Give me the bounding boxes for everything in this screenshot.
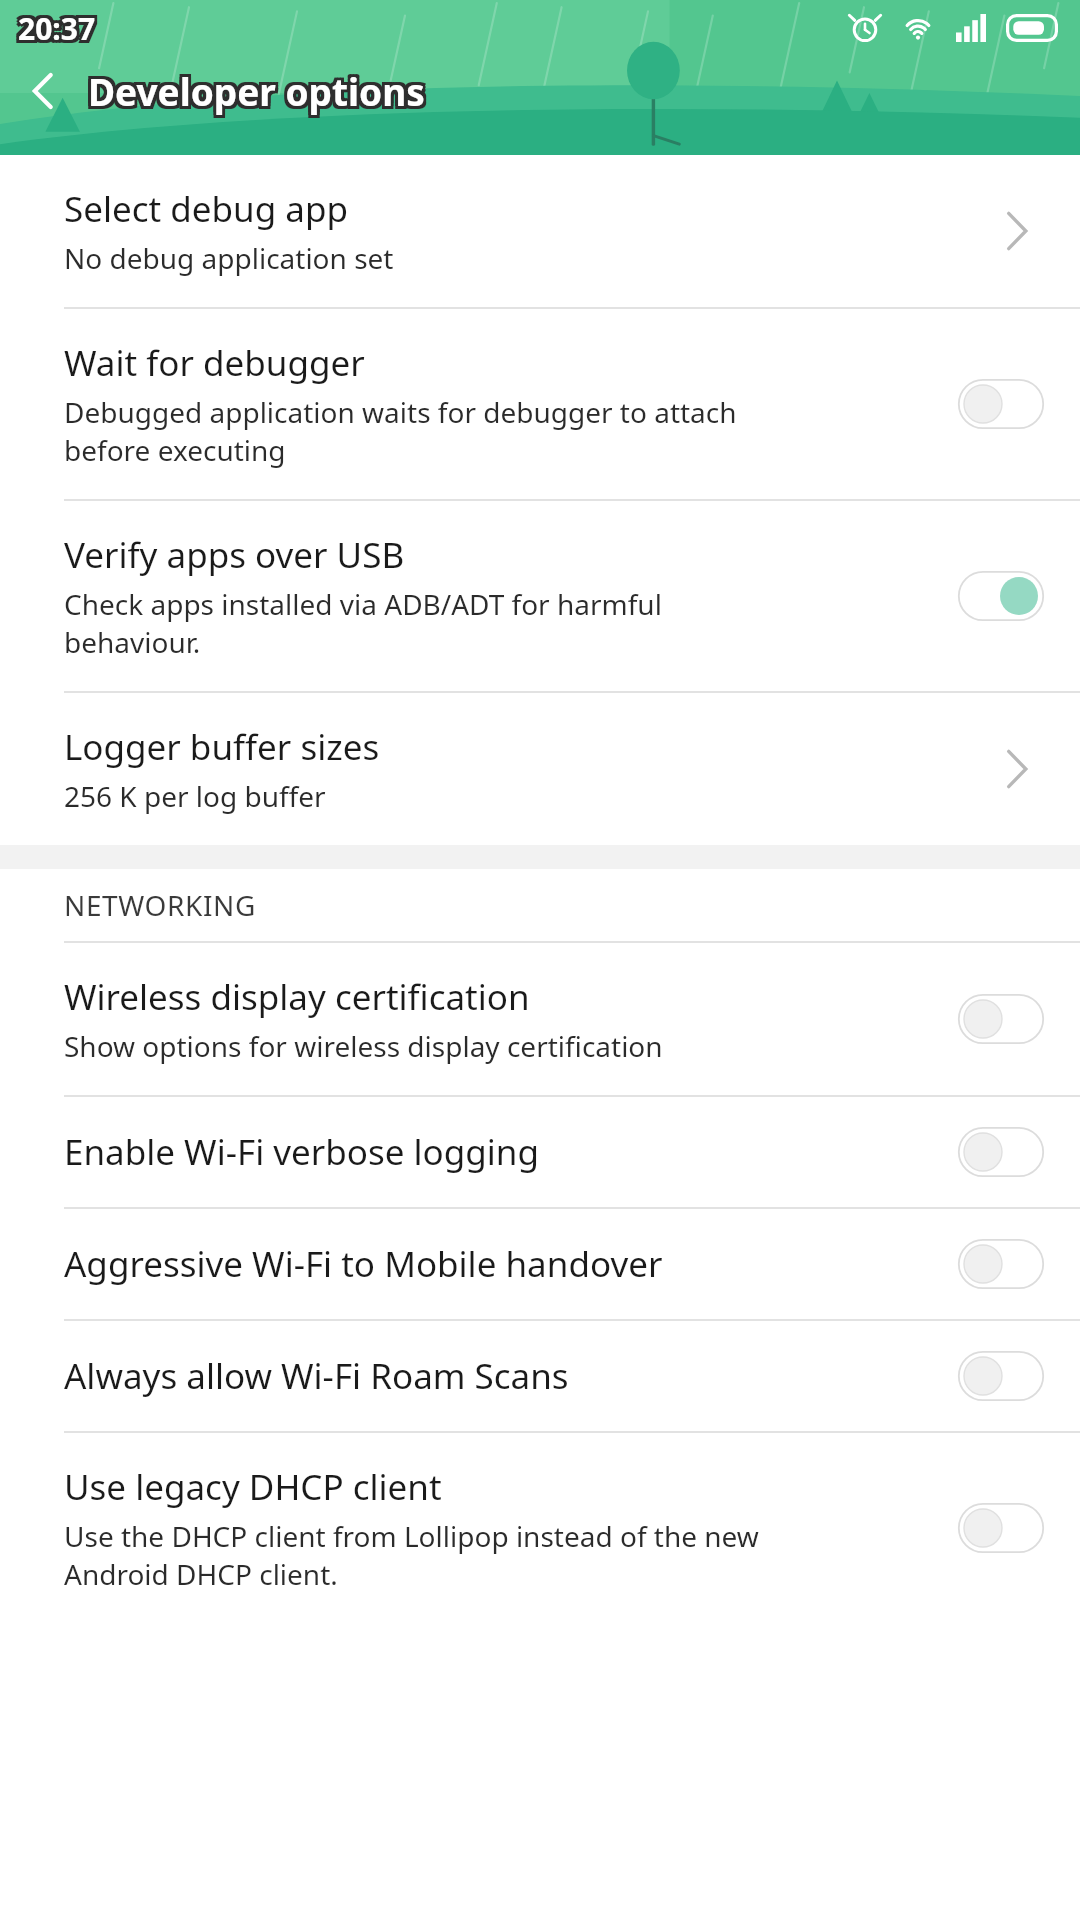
staticText: Select debug app — [64, 185, 348, 233]
button[interactable]: Wait for debugger — [0, 309, 1080, 499]
staticText: Developer options — [91, 66, 428, 116]
staticText: 20:37 — [21, 11, 99, 52]
staticText: 20:37 — [15, 8, 93, 49]
staticText: Check apps installed via ADB/ADT for har… — [64, 585, 662, 661]
button[interactable]: Toggle off — [958, 379, 1044, 429]
staticText: NETWORKING — [64, 886, 256, 924]
staticText: Developer options — [91, 63, 428, 113]
staticText: Wait for debugger — [64, 339, 365, 387]
staticText: 20:37 — [18, 5, 96, 46]
staticText: 20:37 — [15, 5, 93, 46]
button[interactable]: Open — [990, 742, 1044, 796]
staticText: 20:37 — [21, 8, 99, 49]
button[interactable]: Open — [990, 204, 1044, 258]
button[interactable]: Toggle off — [958, 1351, 1044, 1401]
staticText: Wireless display certification — [64, 973, 530, 1021]
staticText: 20:37 — [18, 11, 96, 52]
staticText: Developer options — [88, 69, 425, 119]
button[interactable]: Use legacy DHCP client — [0, 1433, 1080, 1623]
staticText: Always allow Wi-Fi Roam Scans — [64, 1352, 569, 1400]
button[interactable]: Toggle off — [958, 1127, 1044, 1177]
button[interactable]: Always allow Wi-Fi Roam Scans — [0, 1321, 1080, 1431]
staticText: Developer options — [85, 66, 422, 116]
staticText: Show options for wireless display certif… — [64, 1027, 663, 1065]
staticText: No debug application set — [64, 239, 394, 277]
button[interactable]: Toggle off — [958, 1503, 1044, 1553]
button[interactable]: Toggle off — [958, 1239, 1044, 1289]
staticText: Use the DHCP client from Lollipop instea… — [64, 1517, 759, 1593]
button[interactable]: Toggle off — [958, 994, 1044, 1044]
button[interactable]: Back — [0, 47, 88, 135]
staticText: 20:37 — [15, 11, 93, 52]
button[interactable]: Enable Wi-Fi verbose logging — [0, 1097, 1080, 1207]
button[interactable]: Logger buffer sizes — [0, 693, 1080, 845]
staticText: Debugged application waits for debugger … — [64, 393, 737, 469]
button[interactable]: Aggressive Wi-Fi to Mobile handover — [0, 1209, 1080, 1319]
staticText: Developer options — [85, 69, 422, 119]
staticText: Developer options — [91, 69, 428, 119]
button[interactable]: Select debug app — [0, 155, 1080, 307]
staticText: Use legacy DHCP client — [64, 1463, 442, 1511]
button[interactable]: Verify apps over USB — [0, 501, 1080, 691]
staticText: Developer options — [88, 63, 425, 113]
staticText: Developer options — [88, 66, 425, 116]
button[interactable]: Wireless display certification — [0, 943, 1080, 1095]
button[interactable]: Toggle on — [958, 571, 1044, 621]
staticText: 20:37 — [21, 5, 99, 46]
staticText: Enable Wi-Fi verbose logging — [64, 1128, 539, 1176]
staticText: Developer options — [85, 63, 422, 113]
staticText: 256 K per log buffer — [64, 777, 326, 815]
staticText: 20:37 — [18, 8, 96, 49]
staticText: Verify apps over USB — [64, 531, 405, 579]
staticText: Logger buffer sizes — [64, 723, 380, 771]
staticText: Aggressive Wi-Fi to Mobile handover — [64, 1240, 663, 1288]
